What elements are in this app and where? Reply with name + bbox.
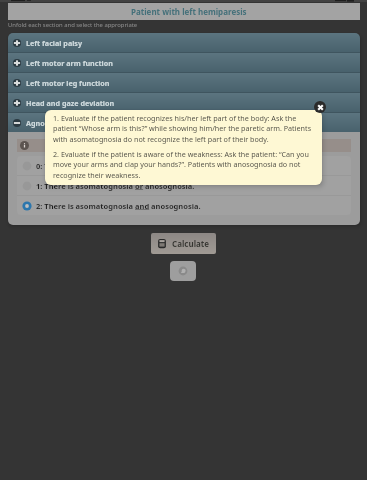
button[interactable]: Agnosia [8, 113, 360, 132]
button[interactable]: 2: There is asomatognosia and anosognosi… [17, 196, 351, 215]
staticText: Left motor arm function [26, 58, 113, 68]
staticText: 1: There is asomatognosia or anosognosia… [36, 181, 195, 191]
staticText: Left facial palsy [26, 38, 83, 48]
button[interactable]: Calculate [151, 233, 216, 254]
staticText: Calculate [172, 238, 210, 249]
button[interactable]: Time since onset [170, 261, 196, 281]
staticText: Unfold each section and select the appro… [8, 21, 138, 29]
staticText: 2. Evaluate if the patient is aware of t… [53, 149, 319, 181]
staticText: Patient with left hemiparesis [131, 6, 247, 17]
button[interactable]: 1: There is asomatognosia or anosognosia… [17, 176, 351, 195]
button[interactable]: Left facial palsy [8, 33, 360, 52]
staticText: Head and gaze deviation [26, 98, 115, 108]
button[interactable]: 0: There is no agnosia [17, 156, 351, 175]
staticText: 0: There is no agnosia [36, 161, 117, 171]
staticText: Left motor leg function [26, 78, 110, 88]
button[interactable]: Head and gaze deviation [8, 93, 360, 112]
staticText: Agnosia [26, 118, 55, 128]
button[interactable]: Left motor arm function [8, 53, 360, 72]
staticText: 1. Evaluate if the patient recognizes hi… [53, 113, 319, 145]
button[interactable]: Close [314, 101, 326, 113]
button[interactable]: Left motor leg function [8, 73, 360, 92]
staticText: 2: There is asomatognosia and anosognosi… [36, 201, 201, 211]
